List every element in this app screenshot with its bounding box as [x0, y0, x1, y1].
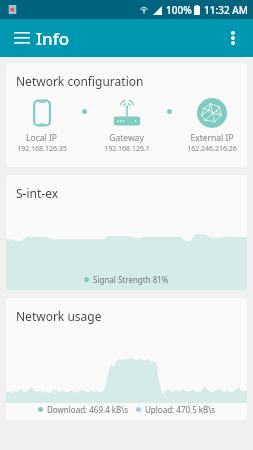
button[interactable]: Network configuration: [6, 63, 247, 167]
staticText: Gateway: [109, 132, 144, 144]
button[interactable]: S-int-ex: [6, 175, 247, 290]
staticText: 162.246.216.26: [187, 144, 237, 154]
button[interactable]: More options: [217, 22, 249, 54]
staticText: Info: [36, 27, 70, 50]
button[interactable]: Gateway: [91, 97, 162, 154]
staticText: S-int-ex: [16, 185, 59, 201]
staticText: External IP: [190, 132, 234, 144]
button[interactable]: Network usage: [6, 298, 247, 420]
button[interactable]: External IP: [176, 97, 247, 154]
staticText: 192.168.126.35: [17, 144, 67, 154]
staticText: Network configuration: [16, 73, 144, 89]
staticText: 100%: [166, 3, 192, 17]
staticText: Network usage: [16, 308, 102, 324]
staticText: Local IP: [26, 132, 57, 144]
staticText: 11:32 AM: [204, 3, 248, 17]
button[interactable]: Local IP: [6, 97, 77, 154]
staticText: Signal Strength 81%: [93, 274, 169, 285]
staticText: Download: 469.4 kB\s: [47, 404, 129, 415]
staticText: Upload: 470.5 kB\s: [145, 404, 216, 415]
staticText: 192.168.126.1: [104, 144, 150, 154]
button[interactable]: Open navigation menu: [6, 22, 38, 54]
